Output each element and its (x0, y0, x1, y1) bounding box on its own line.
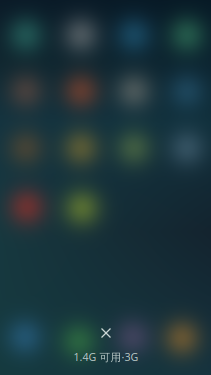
staticText: 1.4G 可用·3G (73, 350, 138, 364)
button[interactable]: Close (96, 323, 115, 342)
